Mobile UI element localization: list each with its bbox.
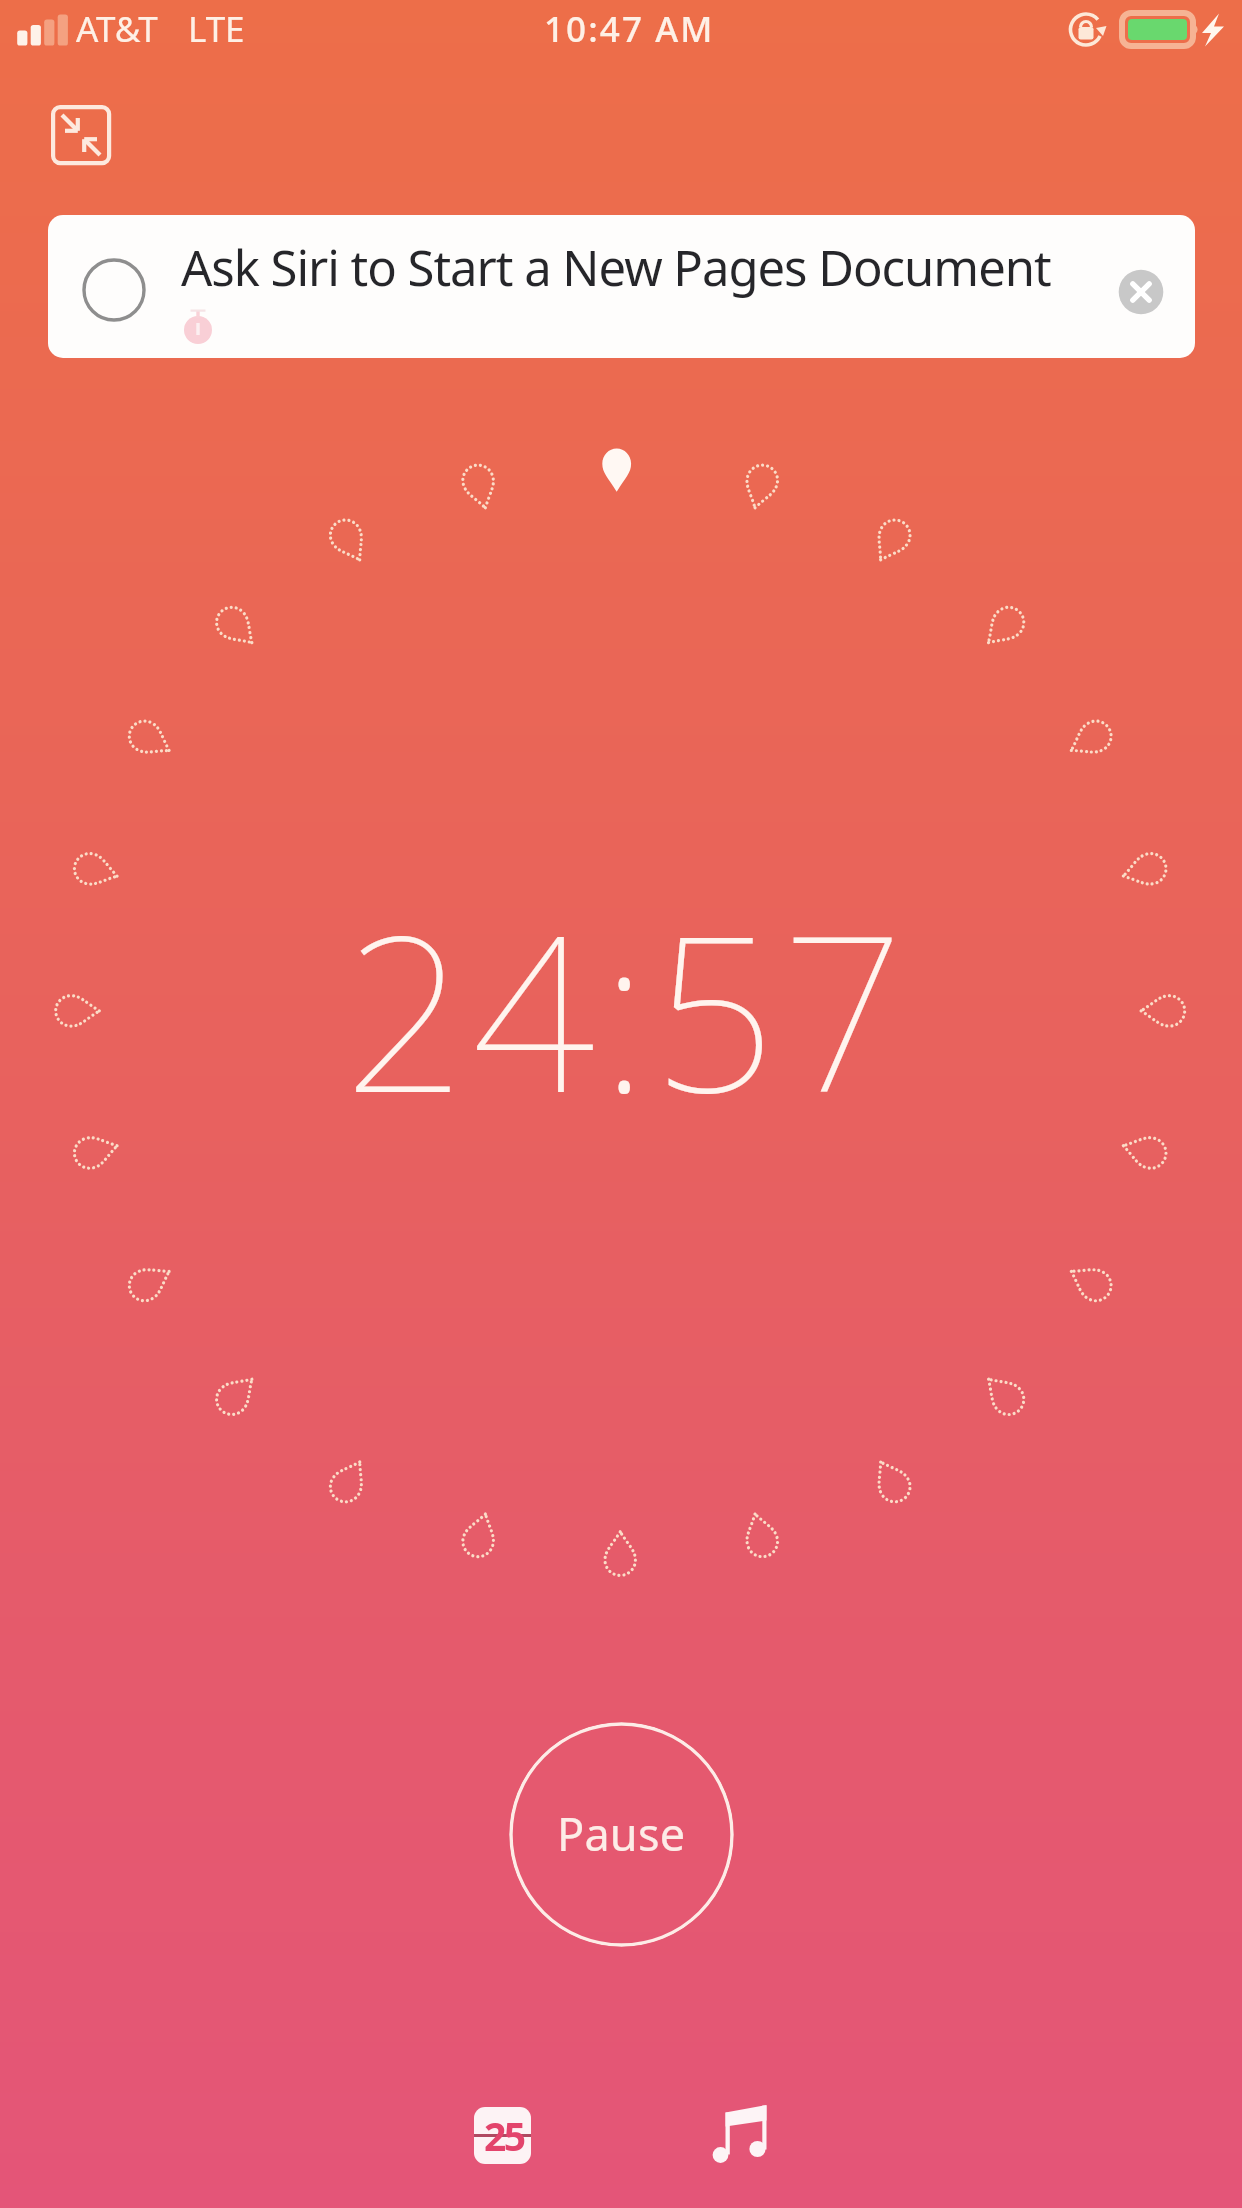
staticText: Pause	[557, 1803, 686, 1864]
button[interactable]: Music	[679, 2075, 800, 2196]
button[interactable]: Calendar	[442, 2075, 563, 2196]
staticText: 25	[484, 2109, 524, 2162]
staticText: Ask Siri to Start a New Pages Document	[181, 234, 1051, 301]
staticText: AT&T	[76, 5, 158, 53]
staticText: 10:47 AM	[544, 5, 715, 53]
button[interactable]: Pause	[509, 1722, 734, 1947]
button[interactable]: Ask Siri to Start a New Pages Document	[48, 215, 1195, 358]
button[interactable]: Dismiss	[1105, 256, 1177, 328]
staticText: 24:57	[343, 861, 910, 1155]
button[interactable]: Collapse	[49, 103, 113, 167]
staticText: LTE	[188, 5, 245, 53]
